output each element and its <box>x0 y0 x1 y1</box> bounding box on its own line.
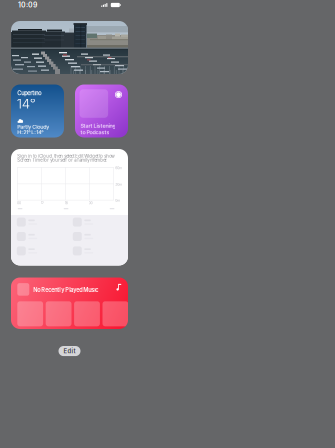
staticText: 00 <box>17 201 21 205</box>
staticText: Edit <box>63 347 75 355</box>
staticText: No Recently Played Music <box>33 286 98 293</box>
staticText: 12 <box>41 201 44 205</box>
button[interactable]: Weather, Cupertino, 14 degrees <box>11 84 64 137</box>
staticText: Sign in to iCloud, then select Edit Widg… <box>17 154 114 159</box>
button[interactable]: Edit <box>58 346 80 356</box>
staticText: 14° <box>17 96 36 112</box>
staticText: H:21° L:14° <box>17 129 43 136</box>
button[interactable]: Podcasts, Start Listening to Podcasts <box>75 84 128 137</box>
button[interactable]: Screen Time widget <box>11 149 128 265</box>
staticText: Screen Time for yourself or a family mem… <box>17 158 107 163</box>
button[interactable]: Music, No Recently Played Music <box>11 277 128 329</box>
staticText: 30m <box>115 182 122 186</box>
staticText: 18 <box>65 201 68 205</box>
staticText: 60m <box>115 166 122 170</box>
staticText: Partly Cloudy <box>17 124 49 130</box>
staticText: 0m <box>115 198 120 203</box>
staticText: to Podcasts <box>80 129 109 136</box>
staticText: Start Listening <box>80 123 115 129</box>
staticText: Cupertino <box>17 90 41 96</box>
staticText: 00 <box>89 201 93 205</box>
staticText: 10:09 <box>18 1 37 9</box>
button[interactable]: Photos widget <box>11 21 128 74</box>
